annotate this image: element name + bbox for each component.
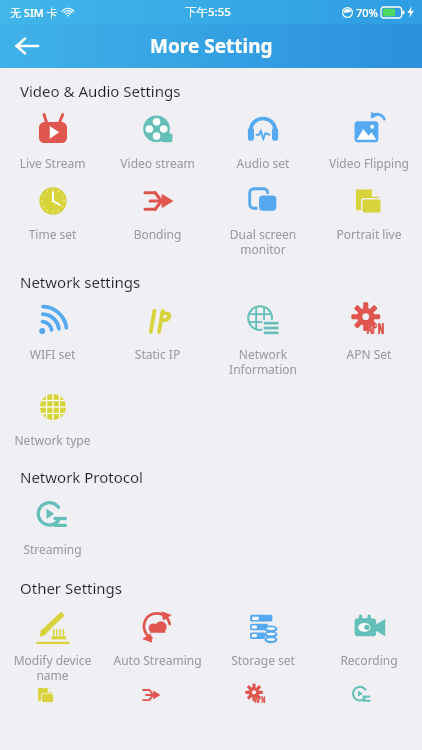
staticText: Modify device name xyxy=(2,652,103,683)
button[interactable] xyxy=(210,684,316,706)
staticText: WIFI set xyxy=(2,346,103,362)
staticText: Network settings xyxy=(20,272,141,292)
button[interactable]: Static IP xyxy=(105,292,210,363)
staticText: Portrait live xyxy=(318,226,420,242)
button[interactable]: Video Flipping xyxy=(316,101,422,172)
button[interactable]: Video stream xyxy=(105,101,210,172)
button[interactable]: Streaming xyxy=(0,487,105,558)
button[interactable]: WIFI set xyxy=(0,292,105,363)
staticText: Other Settings xyxy=(20,578,123,598)
button[interactable]: Live Stream xyxy=(0,101,105,172)
staticText: Network type xyxy=(2,432,103,448)
button[interactable]: Storage set xyxy=(210,598,316,669)
staticText: Network Information xyxy=(212,346,314,377)
button[interactable]: Bonding xyxy=(105,172,210,243)
staticText: 下午5:55 xyxy=(185,4,231,20)
button[interactable]: Dual screen monitor xyxy=(210,172,316,258)
button[interactable] xyxy=(316,684,422,706)
button[interactable]: Audio set xyxy=(210,101,316,172)
staticText: Dual screen monitor xyxy=(212,226,314,257)
button[interactable]: Network type xyxy=(0,378,105,449)
button[interactable]: Auto Streaming xyxy=(105,598,210,669)
button[interactable]: Portrait live xyxy=(316,172,422,243)
staticText: Video & Audio Settings xyxy=(20,81,181,101)
staticText: Streaming xyxy=(2,541,103,557)
staticText: Auto Streaming xyxy=(107,652,208,668)
button[interactable]: Recording xyxy=(316,598,422,669)
staticText: 无 SIM 卡 xyxy=(10,5,58,20)
staticText: Network Protocol xyxy=(20,467,143,487)
staticText: Time set xyxy=(2,226,103,242)
staticText: More Setting xyxy=(150,33,273,59)
button[interactable]: APN Set xyxy=(316,292,422,363)
button[interactable] xyxy=(105,684,210,706)
staticText: Bonding xyxy=(107,226,208,242)
staticText: Live Stream xyxy=(2,155,103,171)
button[interactable]: Network Information xyxy=(210,292,316,378)
staticText: Video Flipping xyxy=(318,155,420,171)
staticText: Video stream xyxy=(107,155,208,171)
staticText: APN Set xyxy=(318,346,420,362)
staticText: Recording xyxy=(318,652,420,668)
staticText: Storage set xyxy=(212,652,314,668)
staticText: 70% xyxy=(356,5,378,20)
button[interactable]: Back xyxy=(6,25,48,67)
button[interactable]: Modify device name xyxy=(0,598,105,684)
button[interactable] xyxy=(0,684,105,706)
staticText: Audio set xyxy=(212,155,314,171)
staticText: Static IP xyxy=(107,346,208,362)
button[interactable]: Time set xyxy=(0,172,105,243)
